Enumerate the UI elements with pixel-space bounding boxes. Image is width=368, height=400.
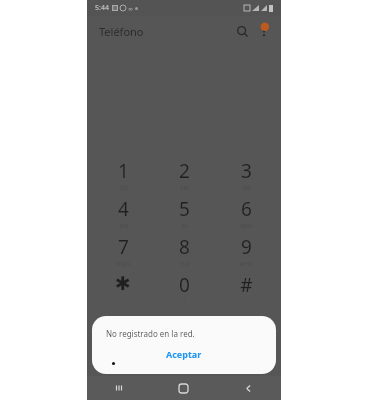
button[interactable]: Back bbox=[216, 376, 281, 400]
staticText: 7 bbox=[118, 234, 129, 260]
button[interactable]: More options bbox=[253, 20, 275, 42]
staticText: No registrado en la red. bbox=[106, 328, 195, 339]
staticText: 4 bbox=[118, 196, 129, 222]
button[interactable]: # bbox=[220, 272, 272, 310]
button[interactable]: 4 bbox=[97, 196, 149, 234]
staticText: 5:44 bbox=[95, 3, 109, 13]
staticText: 2 bbox=[179, 158, 190, 184]
button[interactable]: 2 bbox=[158, 158, 210, 196]
button[interactable]: 1 bbox=[97, 158, 149, 196]
button[interactable]: 8 bbox=[158, 234, 210, 272]
button[interactable]: 6 bbox=[220, 196, 272, 234]
staticText: ∞ bbox=[128, 5, 133, 12]
button[interactable]: 3 bbox=[220, 158, 272, 196]
staticText: 0 bbox=[179, 272, 190, 298]
staticText: 5 bbox=[179, 196, 190, 222]
button[interactable]: Home bbox=[151, 376, 216, 400]
button[interactable]: Search bbox=[231, 20, 253, 42]
staticText: 1 bbox=[118, 158, 129, 184]
staticText: Teléfono bbox=[99, 24, 144, 39]
staticText: # bbox=[240, 272, 253, 298]
button[interactable]: 5 bbox=[158, 196, 210, 234]
staticText: 6 bbox=[241, 196, 252, 222]
button[interactable]: Aceptar bbox=[154, 346, 214, 362]
button[interactable]: Recents bbox=[87, 376, 151, 400]
staticText: 9 bbox=[241, 234, 252, 260]
staticText: Aceptar bbox=[166, 348, 202, 360]
staticText: ✱ bbox=[115, 272, 131, 294]
button[interactable]: 0 bbox=[158, 272, 210, 310]
staticText: 8 bbox=[179, 234, 190, 260]
button[interactable]: 7 bbox=[97, 234, 149, 272]
staticText: 3 bbox=[241, 158, 252, 184]
button[interactable]: 9 bbox=[220, 234, 272, 272]
button[interactable]: ✱ bbox=[97, 272, 149, 310]
